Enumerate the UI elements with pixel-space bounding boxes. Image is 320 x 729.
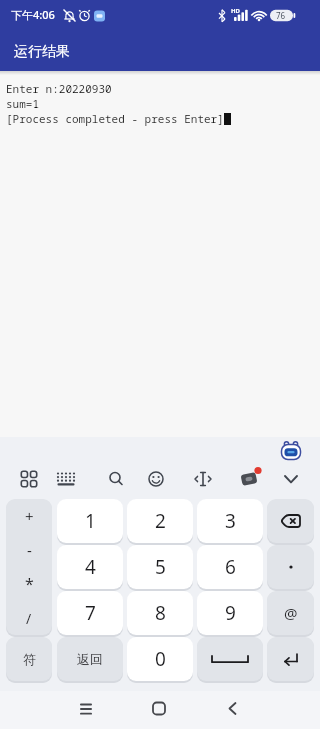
button[interactable] bbox=[267, 499, 314, 543]
button[interactable]: 4 bbox=[57, 545, 123, 589]
staticText: 7 bbox=[85, 600, 96, 626]
staticText: 0 bbox=[155, 646, 166, 672]
button[interactable]: 返回 bbox=[57, 637, 123, 681]
staticText: * bbox=[25, 573, 34, 595]
button[interactable] bbox=[267, 545, 314, 589]
button[interactable] bbox=[197, 637, 263, 681]
button[interactable]: 8 bbox=[127, 591, 193, 635]
button[interactable]: + bbox=[6, 499, 52, 635]
staticText: 符 bbox=[23, 651, 36, 667]
staticText: 5 bbox=[155, 554, 166, 580]
staticText: 返回 bbox=[77, 651, 103, 667]
staticText: 6 bbox=[225, 554, 236, 580]
staticText: sum=1 bbox=[6, 96, 39, 111]
staticText: Enter n:20220930 bbox=[6, 81, 112, 96]
button[interactable]: 2 bbox=[127, 499, 193, 543]
button[interactable] bbox=[106, 691, 213, 729]
button[interactable]: 符 bbox=[6, 637, 52, 681]
staticText: - bbox=[27, 540, 32, 560]
button[interactable]: 5 bbox=[127, 545, 193, 589]
staticText: 4 bbox=[85, 554, 96, 580]
staticText: HD bbox=[231, 7, 240, 15]
staticText: @ bbox=[284, 603, 298, 623]
button[interactable]: @ bbox=[267, 591, 314, 635]
staticText: + bbox=[25, 506, 34, 526]
staticText: [Process completed - press Enter] bbox=[6, 111, 224, 126]
button[interactable]: 6 bbox=[197, 545, 263, 589]
staticText: 2 bbox=[155, 508, 166, 534]
button[interactable]: 9 bbox=[197, 591, 263, 635]
staticText: 3 bbox=[225, 508, 236, 534]
staticText: 下午4:06 bbox=[11, 7, 55, 22]
staticText: 运行结果 bbox=[14, 43, 70, 61]
staticText: 9 bbox=[225, 600, 236, 626]
button[interactable]: 1 bbox=[57, 499, 123, 543]
button[interactable]: 7 bbox=[57, 591, 123, 635]
staticText: 76 bbox=[276, 10, 286, 21]
button[interactable] bbox=[0, 691, 106, 729]
staticText: 1 bbox=[85, 508, 96, 534]
button[interactable] bbox=[213, 691, 320, 729]
button[interactable]: 3 bbox=[197, 499, 263, 543]
staticText: / bbox=[26, 609, 32, 628]
button[interactable] bbox=[267, 637, 314, 681]
staticText: 8 bbox=[155, 600, 166, 626]
button[interactable]: 0 bbox=[127, 637, 193, 681]
